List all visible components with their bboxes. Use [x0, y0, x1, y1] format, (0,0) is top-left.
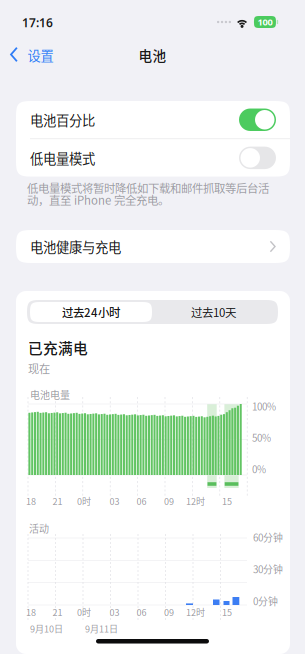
staticText: 06 [136, 494, 146, 507]
staticText: 电池健康与充电 [30, 237, 121, 256]
staticText: 100% [252, 399, 276, 413]
staticText: 过去24小时 [62, 304, 120, 320]
staticText: 动，直至 iPhone 完全充电。 [27, 191, 169, 208]
staticText: 电池 [138, 45, 166, 65]
staticText: 60分钟 [253, 530, 283, 544]
staticText: 现在 [28, 360, 50, 376]
staticText: 12时 [186, 494, 205, 507]
staticText: 17:16 [22, 14, 53, 30]
staticText: 06 [136, 605, 146, 618]
button[interactable]: 电池百分比 [16, 101, 290, 138]
staticText: 21 [52, 494, 62, 507]
staticText: 21 [52, 605, 62, 618]
staticText: 03 [109, 494, 119, 507]
staticText: 电池百分比 [30, 110, 95, 129]
staticText: 18 [26, 605, 36, 618]
staticText: 已充满电 [28, 337, 88, 358]
staticText: 低电量模式 [30, 148, 95, 167]
staticText: 9月11日 [85, 622, 118, 635]
staticText: 09 [164, 494, 174, 507]
staticText: 03 [109, 605, 119, 618]
staticText: 15 [222, 605, 232, 618]
staticText: 100 [257, 16, 272, 28]
staticText: 12时 [186, 605, 205, 618]
button[interactable]: 过去10天 [152, 302, 275, 322]
button[interactable]: 过去24小时 [30, 302, 152, 322]
button[interactable]: 设置 [0, 38, 62, 72]
staticText: 低电量模式将暂时降低如下载和邮件抓取等后台活 [27, 179, 269, 196]
button[interactable]: 低电量模式 [16, 139, 290, 177]
staticText: 0时 [77, 605, 91, 618]
staticText: 15 [222, 494, 232, 507]
staticText: 18 [26, 494, 36, 507]
staticText: 30分钟 [253, 562, 283, 576]
staticText: 过去10天 [191, 304, 236, 320]
button[interactable]: 电池健康与充电 [16, 230, 290, 263]
staticText: 电池电量 [30, 387, 70, 402]
staticText: 0时 [77, 494, 91, 507]
staticText: 50% [252, 430, 271, 445]
staticText: 活动 [29, 521, 49, 535]
staticText: 9月10日 [30, 622, 63, 635]
staticText: 0分钟 [253, 594, 278, 608]
staticText: 设置 [28, 45, 54, 65]
staticText: 0% [252, 462, 266, 476]
staticText: 09 [164, 605, 174, 618]
